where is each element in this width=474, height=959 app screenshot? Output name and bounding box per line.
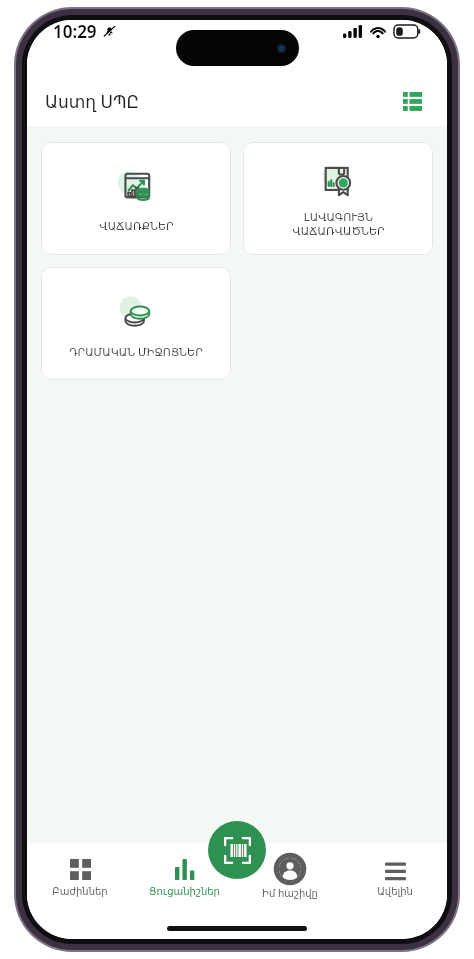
staticText: 10:29: [53, 20, 97, 43]
button[interactable]: ՎԱՃԱՌՔՆԵՐ: [41, 142, 231, 255]
button[interactable]: ԴՐԱՄԱԿԱՆ ՄԻՋՈՑՆԵՐ: [41, 267, 231, 380]
staticText: Ավելին: [377, 886, 413, 898]
button[interactable]: Իմ հաշիվը: [237, 853, 342, 904]
button[interactable]: ԼԱՎԱԳՈՒՅՆ ՎԱՃԱՌՎԱԾՆԵՐ: [243, 142, 433, 255]
button[interactable]: Ցուցանիշներ: [132, 853, 237, 902]
staticText: ԼԱՎԱԳՈՒՅՆ ՎԱՃԱՌՎԱԾՆԵՐ: [292, 211, 385, 238]
staticText: ՎԱՃԱՌՔՆԵՐ: [99, 220, 174, 233]
staticText: Իմ հաշիվը: [262, 886, 318, 900]
staticText: ԴՐԱՄԱԿԱՆ ՄԻՋՈՑՆԵՐ: [69, 344, 203, 359]
staticText: Ցուցանիշներ: [149, 886, 220, 898]
staticText: Բաժիններ: [52, 886, 108, 898]
button[interactable]: Scan barcode: [208, 821, 266, 879]
button[interactable]: Բաժիններ: [27, 853, 132, 902]
button[interactable]: List view: [395, 84, 429, 118]
staticText: Աստղ ՍՊԸ: [45, 90, 140, 113]
button[interactable]: Ավելին: [342, 853, 447, 902]
